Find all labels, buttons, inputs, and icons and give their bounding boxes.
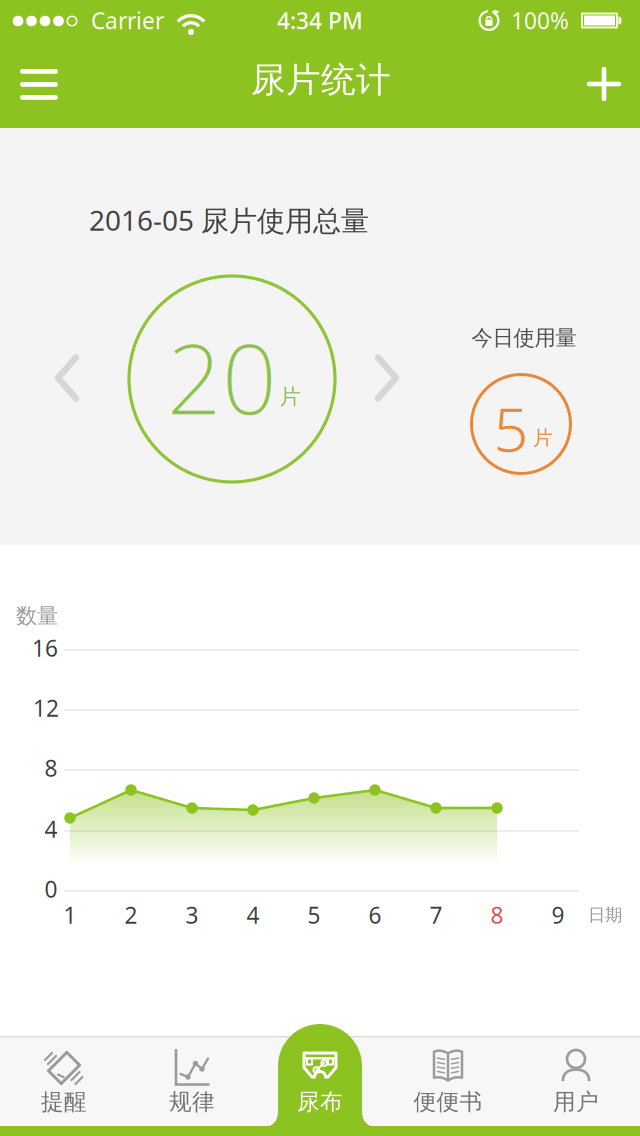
staticText: 4 <box>44 814 57 844</box>
staticText: 5 <box>493 387 528 469</box>
staticText: 5 <box>307 900 320 930</box>
staticText: 2 <box>124 900 137 930</box>
staticText: 9 <box>551 900 564 930</box>
staticText: 20 <box>167 313 277 441</box>
staticText: 尿布 <box>297 1088 343 1116</box>
staticText: 今日使用量 <box>471 325 576 351</box>
staticText: 2016-05 尿片使用总量 <box>89 201 369 239</box>
button[interactable]: 规律 <box>128 1036 256 1136</box>
staticText: 1 <box>63 900 76 930</box>
button[interactable]: 便便书 <box>384 1036 512 1136</box>
staticText: 3 <box>185 900 198 930</box>
staticText: 尿片统计 <box>251 59 391 101</box>
button[interactable] <box>576 56 632 112</box>
staticText: 4 <box>246 900 259 930</box>
button[interactable] <box>373 357 401 398</box>
staticText: 用户 <box>553 1088 599 1116</box>
staticText: 数量 <box>16 603 58 629</box>
staticText: 8 <box>490 900 503 930</box>
staticText: 100% <box>511 5 569 35</box>
button[interactable]: 提醒 <box>0 1036 128 1136</box>
staticText: 16 <box>32 633 58 663</box>
staticText: 6 <box>368 900 381 930</box>
staticText: 8 <box>44 753 57 783</box>
staticText: 片 <box>533 426 553 450</box>
staticText: 便便书 <box>413 1088 482 1116</box>
button[interactable]: 尿布 <box>256 1036 384 1136</box>
staticText: 片 <box>279 384 300 410</box>
staticText: 提醒 <box>41 1088 87 1116</box>
button[interactable] <box>6 55 72 113</box>
staticText: 12 <box>33 693 59 723</box>
staticText: Carrier <box>91 5 164 35</box>
staticText: 日期 <box>588 904 622 926</box>
staticText: 7 <box>429 900 442 930</box>
staticText: 4:34 PM <box>277 5 363 35</box>
button[interactable] <box>53 357 81 398</box>
staticText: 0 <box>44 874 57 904</box>
staticText: 规律 <box>169 1088 215 1116</box>
button[interactable]: 用户 <box>512 1036 640 1136</box>
